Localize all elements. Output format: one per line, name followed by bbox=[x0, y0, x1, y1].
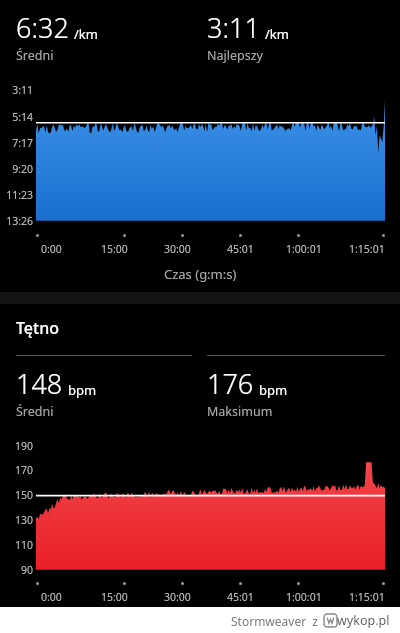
staticText: Maksimum bbox=[207, 403, 273, 420]
staticText: 90 bbox=[0, 563, 33, 577]
staticText: Stormweaver z bbox=[231, 613, 318, 629]
staticText: /km bbox=[265, 25, 289, 43]
staticText: Tętno bbox=[16, 317, 59, 339]
staticText: 1:00:01 bbox=[286, 242, 322, 256]
staticText: Czas (g:m:s) bbox=[164, 265, 237, 283]
staticText: 30:00 bbox=[164, 242, 191, 256]
staticText: 9:20 bbox=[0, 162, 33, 176]
staticText: 0:00 bbox=[41, 242, 62, 256]
staticText: 3:11 bbox=[207, 9, 260, 46]
staticText: /km bbox=[74, 25, 98, 43]
staticText: 6:32 bbox=[16, 9, 69, 46]
staticText: 15:00 bbox=[101, 242, 128, 256]
button[interactable]: 176 bbox=[207, 365, 400, 420]
staticText: 0:00 bbox=[41, 590, 62, 604]
staticText: Średni bbox=[16, 403, 54, 420]
staticText: 15:00 bbox=[101, 590, 128, 604]
staticText: 176 bbox=[207, 365, 254, 402]
staticText: 3:11 bbox=[0, 83, 33, 97]
button[interactable]: 148 bbox=[16, 365, 191, 420]
staticText: 45:01 bbox=[227, 590, 254, 604]
staticText: Średni bbox=[16, 47, 54, 64]
staticText: 13:26 bbox=[0, 214, 33, 228]
staticText: 7:17 bbox=[0, 136, 33, 150]
staticText: 170 bbox=[0, 463, 33, 477]
staticText: wykop.pl bbox=[337, 612, 390, 629]
staticText: 130 bbox=[0, 513, 33, 527]
staticText: 148 bbox=[16, 365, 63, 402]
button[interactable]: 6:32 bbox=[16, 9, 191, 64]
staticText: 150 bbox=[0, 488, 33, 502]
staticText: 190 bbox=[0, 439, 33, 453]
button[interactable]: Tętno bbox=[16, 317, 59, 339]
staticText: 1:15:01 bbox=[349, 590, 385, 604]
staticText: 45:01 bbox=[227, 242, 254, 256]
staticText: 30:00 bbox=[164, 590, 191, 604]
staticText: 5:14 bbox=[0, 110, 33, 124]
button[interactable]: 3:11 bbox=[207, 9, 400, 64]
staticText: 110 bbox=[0, 538, 33, 552]
staticText: 1:00:01 bbox=[286, 590, 322, 604]
staticText: 1:15:01 bbox=[349, 242, 385, 256]
staticText: Najlepszy bbox=[207, 47, 263, 64]
staticText: bpm bbox=[259, 381, 288, 399]
other: wykop.pl logo bbox=[324, 614, 337, 627]
staticText: 11:23 bbox=[0, 188, 33, 202]
staticText: bpm bbox=[68, 381, 97, 399]
